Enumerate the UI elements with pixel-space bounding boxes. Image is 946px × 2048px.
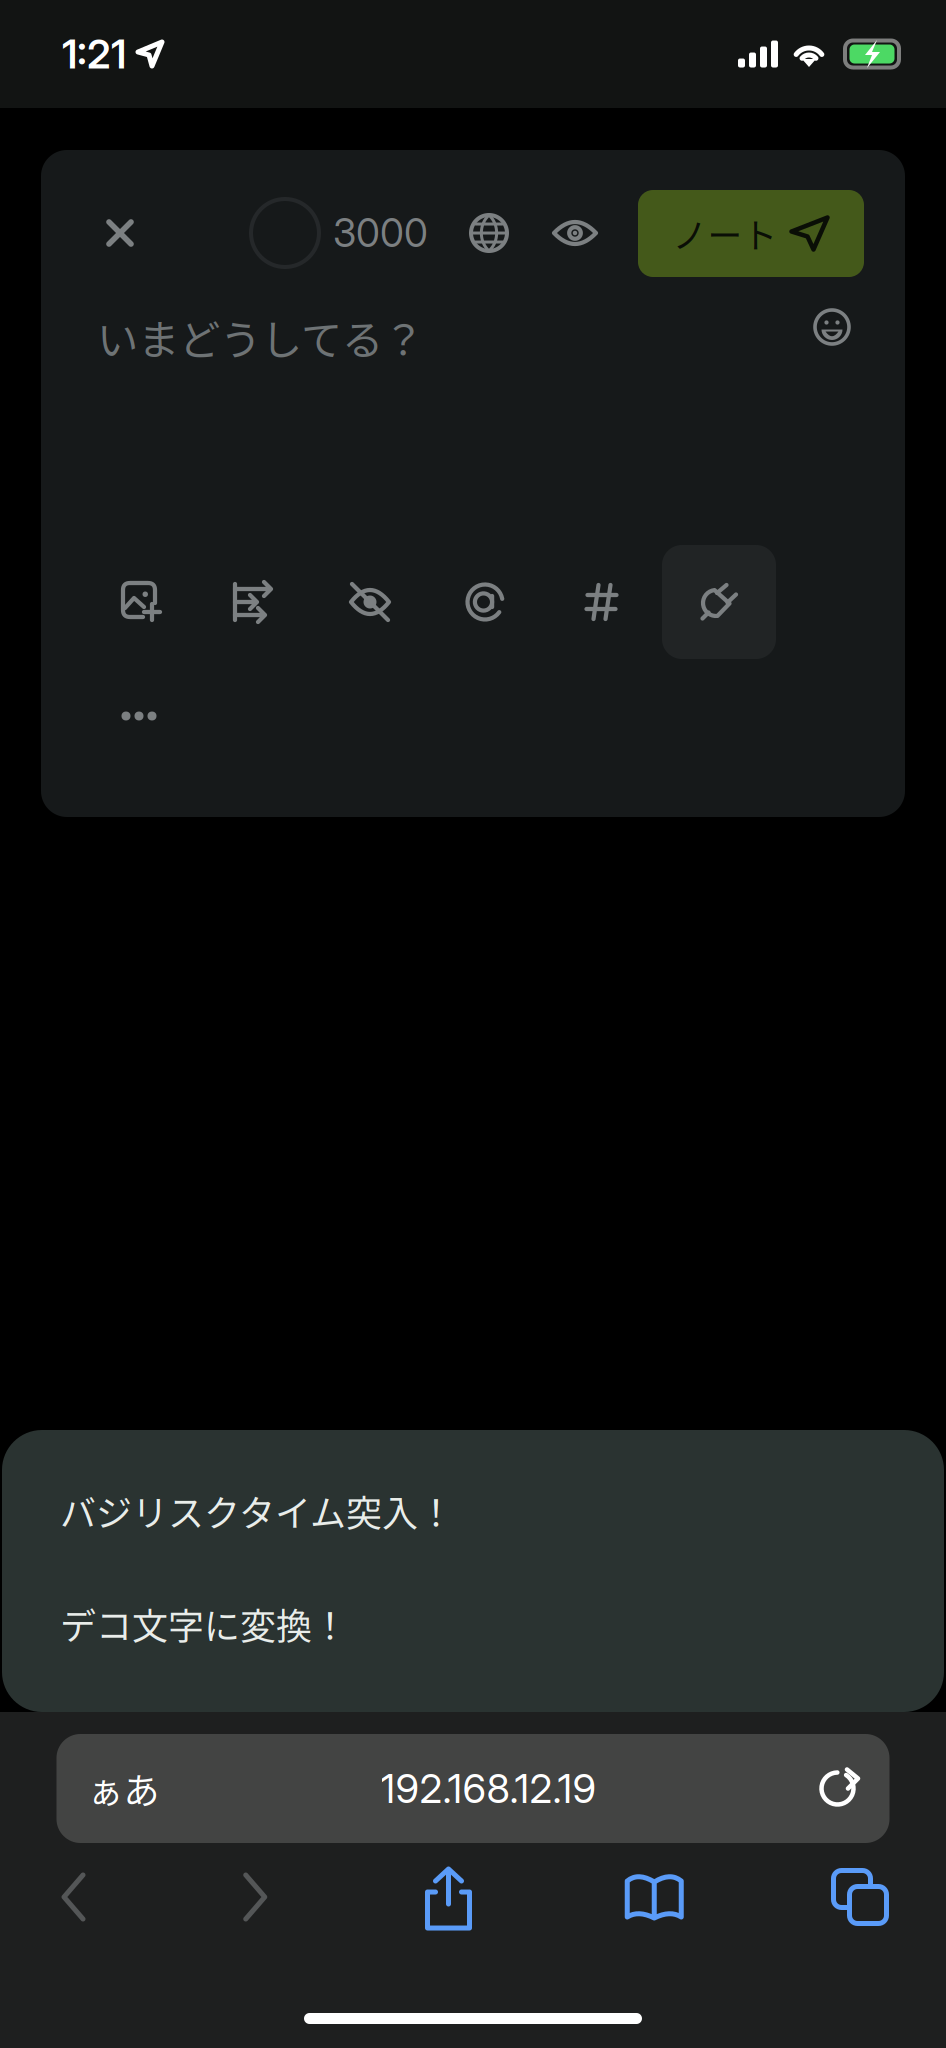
button[interactable]: Back: [47, 1859, 101, 1935]
button[interactable]: Preview: [533, 191, 617, 275]
button[interactable]: Add photo: [95, 556, 187, 648]
button[interactable]: Forward: [229, 1859, 283, 1935]
button[interactable]: Hashtag: [556, 556, 648, 648]
button[interactable]: Mention: [439, 556, 531, 648]
staticText: いまどうしてる？: [97, 307, 424, 367]
button[interactable]: Tabs: [822, 1859, 898, 1935]
button[interactable]: Audience: [447, 191, 531, 275]
button[interactable]: Close: [76, 189, 164, 277]
button[interactable]: Bookmarks: [614, 1862, 694, 1932]
button[interactable]: ノート: [638, 190, 864, 277]
staticText: ノート: [672, 208, 777, 259]
staticText: デコ文字に変換！: [60, 1598, 348, 1650]
button[interactable]: Hide: [324, 556, 416, 648]
button[interactable]: Emoji: [794, 289, 870, 365]
button[interactable]: Share: [410, 1853, 486, 1941]
button[interactable]: More: [89, 680, 189, 752]
staticText: ぁあ: [87, 1762, 159, 1814]
button[interactable]: Thread: [206, 556, 298, 648]
staticText: バジリスクタイム突入！: [60, 1485, 454, 1537]
staticText: 1:21: [62, 30, 126, 78]
staticText: 192.168.12.19: [380, 1764, 596, 1813]
button[interactable]: ぁあ: [56, 1734, 889, 1843]
button[interactable]: Plugin: [673, 556, 765, 648]
staticText: 3000: [333, 210, 428, 256]
